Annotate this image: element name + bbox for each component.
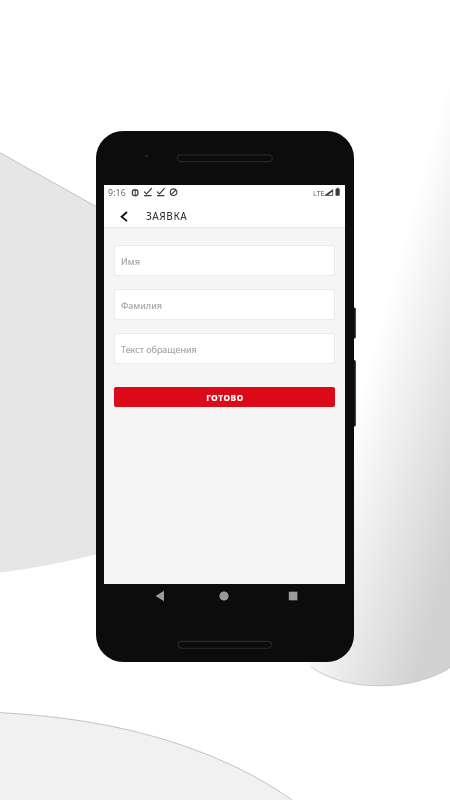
- staticText: Фамилия: [121, 299, 162, 311]
- button[interactable]: Back: [115, 203, 133, 221]
- staticText: LTE: [313, 189, 325, 199]
- staticText: Текст обращения: [121, 343, 197, 355]
- staticText: 9:16: [108, 187, 126, 199]
- button[interactable]: Recent apps: [281, 584, 305, 608]
- staticText: ЗАЯВКА: [146, 209, 188, 223]
- button[interactable]: Home: [212, 584, 236, 608]
- button[interactable]: Имя: [114, 245, 335, 276]
- button[interactable]: ГОТОВО: [114, 387, 335, 407]
- button[interactable]: Фамилия: [114, 289, 335, 320]
- button[interactable]: Текст обращения: [114, 333, 335, 364]
- button[interactable]: Back: [148, 584, 172, 608]
- staticText: ГОТОВО: [206, 392, 244, 403]
- staticText: Имя: [121, 255, 140, 267]
